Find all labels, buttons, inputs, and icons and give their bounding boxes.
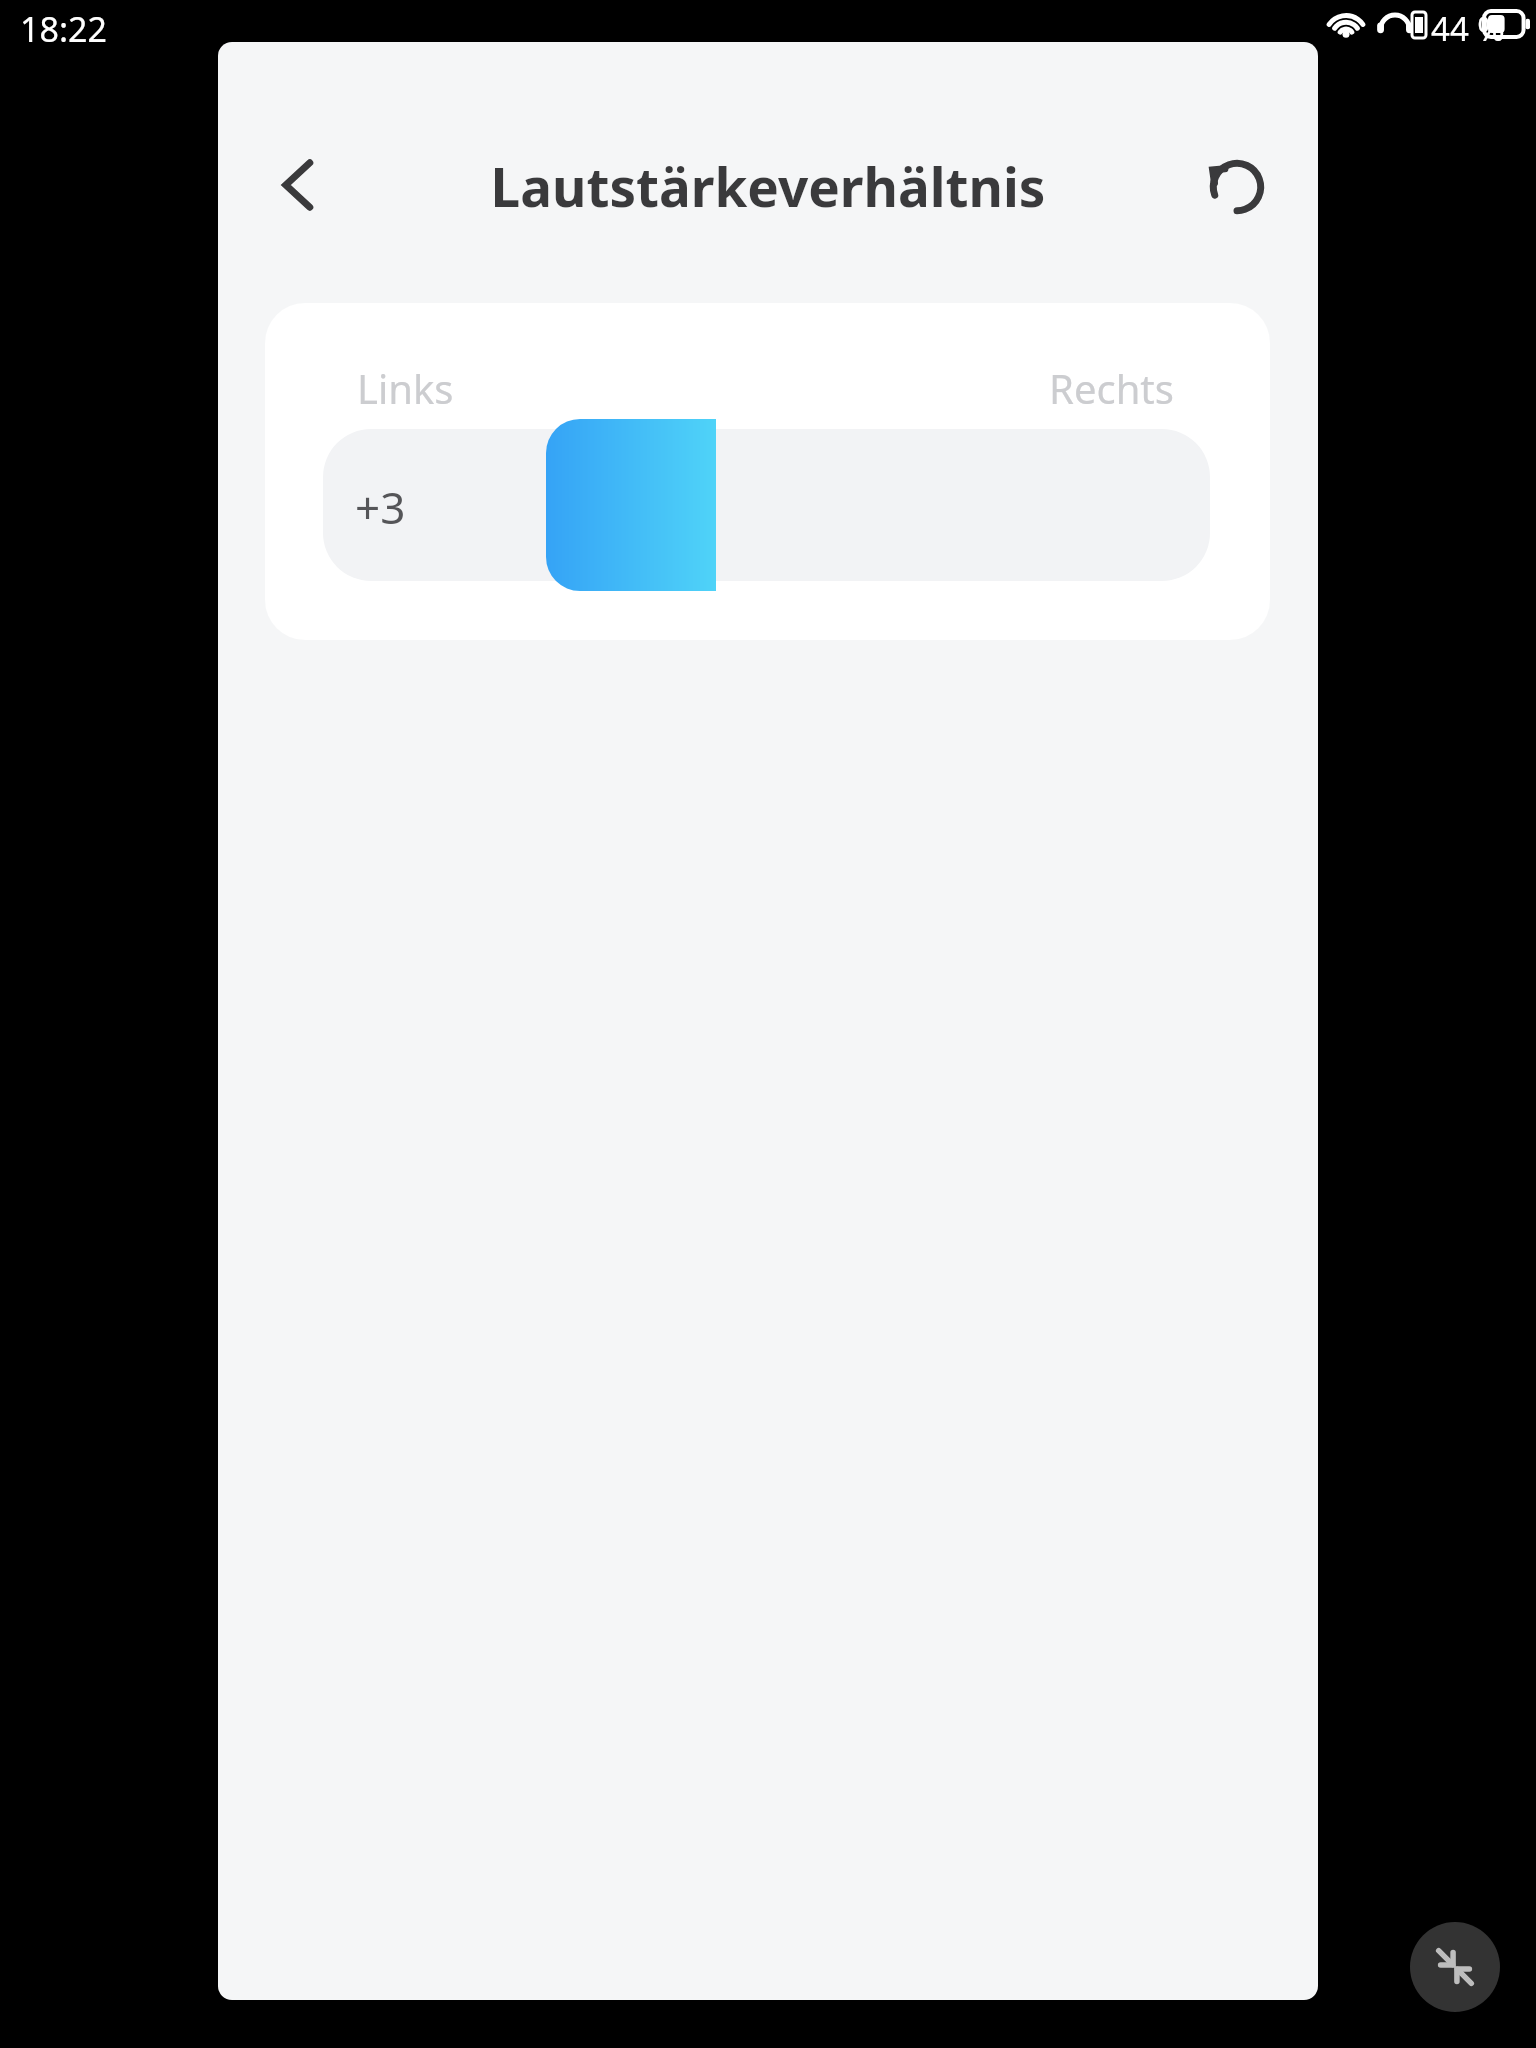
staticText: 44 % — [1431, 6, 1505, 51]
button[interactable]: Reset — [1180, 128, 1294, 242]
button[interactable]: +3 — [323, 429, 1210, 581]
button[interactable]: Collapse — [1410, 1922, 1500, 2012]
staticText: Lautstärkeverhältnis — [218, 150, 1318, 230]
staticText: Links — [357, 361, 454, 415]
staticText: Rechts — [1049, 361, 1174, 415]
button[interactable]: Back — [242, 128, 356, 242]
staticText: 18:22 — [20, 6, 107, 52]
staticText: +3 — [355, 477, 406, 537]
